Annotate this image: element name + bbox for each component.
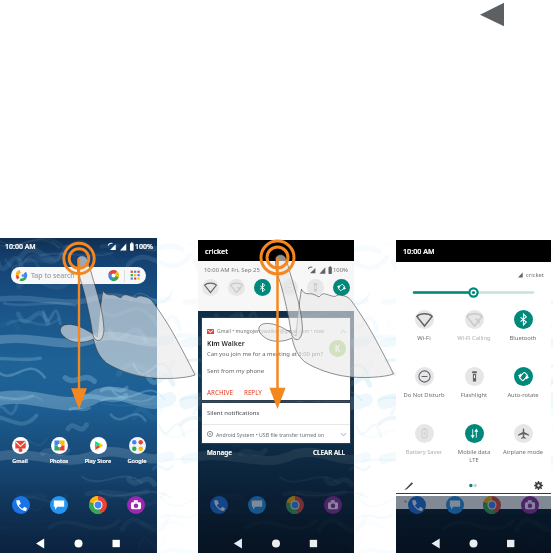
- button[interactable]: Manage: [207, 448, 232, 457]
- staticText: REPLY: [244, 388, 262, 396]
- button[interactable]: Settings: [534, 481, 543, 490]
- staticText: Can you join me for a meeting at 3:00 pm…: [207, 350, 323, 358]
- staticText: cricket: [205, 246, 228, 256]
- staticText: Flashlight: [450, 391, 498, 399]
- staticText: Play Store: [81, 457, 115, 465]
- button[interactable]: REPLY: [244, 388, 262, 396]
- staticText: Google: [120, 457, 154, 465]
- button[interactable]: Quick setting: [307, 279, 324, 296]
- staticText: 10:00 AM: [5, 242, 36, 252]
- staticText: Airplane mode: [499, 448, 547, 456]
- button[interactable]: Airplane mode: [499, 424, 547, 456]
- staticText: Wi-Fi: [400, 334, 448, 342]
- button[interactable]: Chrome: [89, 496, 107, 514]
- staticText: Wi-Fi Calling: [450, 334, 498, 342]
- staticText: Gmail: [3, 457, 37, 465]
- staticText: Do Not Disturb: [400, 391, 448, 399]
- button[interactable]: Google: [120, 437, 154, 465]
- staticText: Mobile data: [450, 448, 498, 456]
- button[interactable]: Camera: [521, 496, 539, 514]
- button[interactable]: ARCHIVE: [207, 388, 233, 396]
- staticText: Bluetooth: [499, 334, 547, 342]
- staticText: K: [335, 343, 341, 354]
- button[interactable]: Gmail: [3, 437, 37, 465]
- staticText: CLEAR ALL: [313, 448, 345, 457]
- staticText: LTE: [450, 456, 498, 464]
- button[interactable]: Messages: [248, 496, 266, 514]
- button[interactable]: Battery Saver: [400, 424, 448, 456]
- button[interactable]: Phone: [408, 496, 426, 514]
- button[interactable]: Auto-rotate: [499, 367, 547, 399]
- button[interactable]: Do Not Disturb: [400, 367, 448, 399]
- staticText: Tap to search: [31, 271, 75, 281]
- staticText: Manage: [207, 448, 232, 457]
- staticText: Android System • USB file transfer turne…: [216, 431, 325, 438]
- button[interactable]: Chrome: [286, 496, 304, 514]
- staticText: cricket: [526, 271, 544, 279]
- button[interactable]: Wi-Fi Calling: [450, 310, 498, 342]
- button[interactable]: Messages: [446, 496, 464, 514]
- button[interactable]: Quick setting: [281, 279, 298, 296]
- button[interactable]: Gmail • mungojerrywalker@gmail.com • now: [202, 318, 350, 400]
- button[interactable]: Quick setting: [228, 279, 245, 296]
- button[interactable]: Android System • USB file transfer turne…: [207, 425, 346, 443]
- button[interactable]: Wi-Fi: [400, 310, 448, 342]
- staticText: Sent from my phone: [207, 367, 265, 375]
- staticText: 10:00 AM Fri, Sep 25: [204, 266, 260, 274]
- button[interactable]: Tap to search: [11, 267, 146, 284]
- button[interactable]: Quick setting: [202, 279, 219, 296]
- button[interactable]: Back: [469, 0, 514, 45]
- staticText: Silent notifications: [207, 409, 260, 417]
- button[interactable]: Camera: [324, 496, 342, 514]
- button[interactable]: Bluetooth: [499, 310, 547, 342]
- button[interactable]: Chrome: [483, 496, 501, 514]
- button[interactable]: Phone: [12, 496, 30, 514]
- button[interactable]: CLEAR ALL: [313, 448, 345, 457]
- button[interactable]: Mobile data: [450, 424, 498, 464]
- staticText: Auto-rotate: [499, 391, 547, 399]
- staticText: 10:00 AM: [403, 246, 435, 256]
- staticText: Photos: [42, 457, 76, 465]
- button[interactable]: Quick setting: [254, 279, 271, 296]
- staticText: Gmail • mungojerrywalker@gmail.com • now: [217, 328, 324, 335]
- staticText: ARCHIVE: [207, 388, 233, 396]
- staticText: 100%: [135, 242, 153, 252]
- staticText: Battery Saver: [400, 448, 448, 456]
- button[interactable]: Flashlight: [450, 367, 498, 399]
- staticText: 100%: [333, 266, 349, 274]
- button[interactable]: Quick setting: [333, 279, 350, 296]
- button[interactable]: Photos: [42, 437, 76, 465]
- button[interactable]: Camera: [127, 496, 145, 514]
- button[interactable]: Phone: [210, 496, 228, 514]
- staticText: Kim Walker: [207, 339, 245, 348]
- button[interactable]: Edit: [404, 481, 413, 490]
- button[interactable]: Play Store: [81, 437, 115, 465]
- button[interactable]: Messages: [50, 496, 68, 514]
